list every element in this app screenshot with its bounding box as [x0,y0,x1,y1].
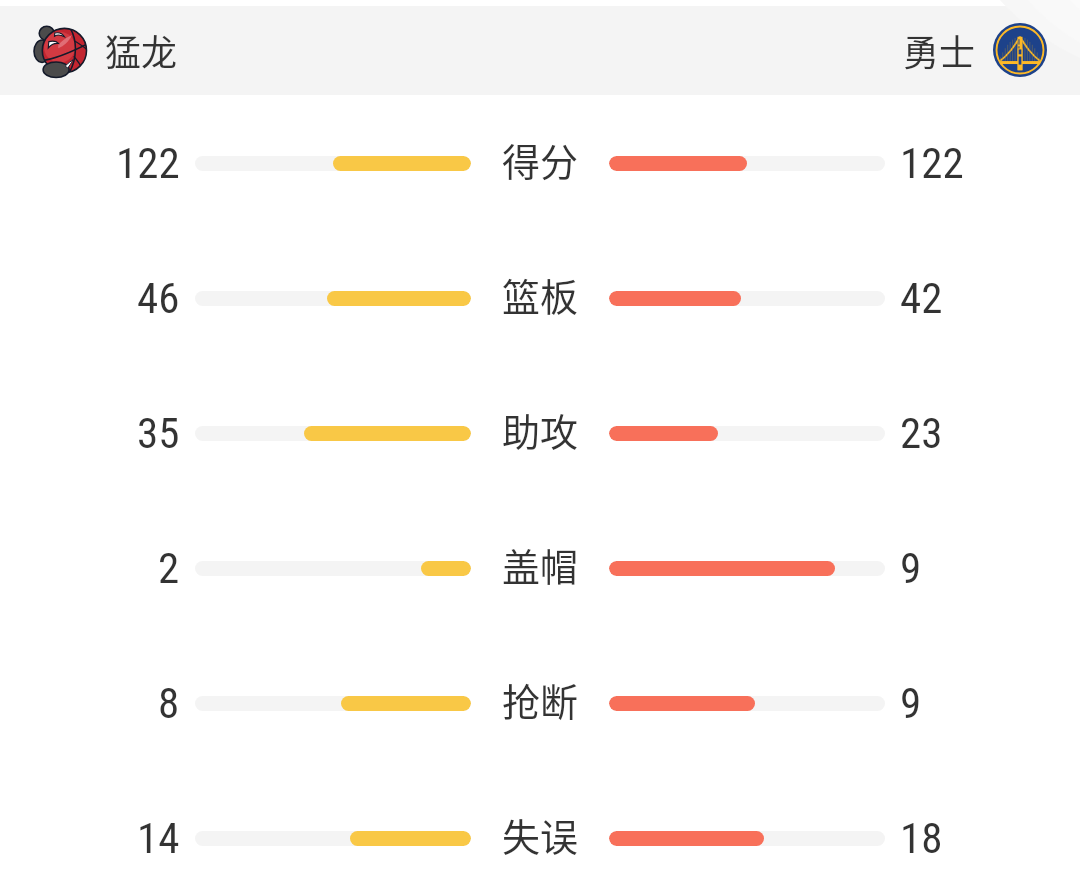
staticText: 勇士 [903,24,976,76]
staticText: 46 [137,273,180,323]
staticText: 9 [900,543,922,593]
staticText: 失误 [502,807,579,862]
button[interactable]: 2 [0,523,1080,613]
button[interactable]: 勇士 [903,6,1047,95]
other: Golden State Warriors [993,23,1047,77]
button[interactable]: 46 [0,253,1080,343]
button[interactable]: 35 [0,388,1080,478]
staticText: 篮板 [502,267,579,322]
staticText: 得分 [502,132,579,187]
staticText: 23 [900,408,943,458]
staticText: 42 [900,273,943,323]
staticText: 122 [900,138,964,188]
staticText: 35 [137,408,180,458]
staticText: 14 [137,813,180,863]
staticText: 2 [158,543,180,593]
staticText: 抢断 [502,672,579,727]
staticText: 助攻 [502,402,579,457]
other: Toronto Raptors [34,25,86,77]
button[interactable]: 8 [0,658,1080,748]
staticText: 9 [900,678,922,728]
button[interactable]: Toronto Raptors [34,6,178,95]
staticText: 猛龙 [105,24,178,76]
staticText: 122 [116,138,180,188]
button[interactable]: 122 [0,118,1080,208]
button[interactable]: 14 [0,793,1080,883]
staticText: 18 [900,813,943,863]
staticText: 8 [158,678,180,728]
staticText: 盖帽 [502,537,579,592]
